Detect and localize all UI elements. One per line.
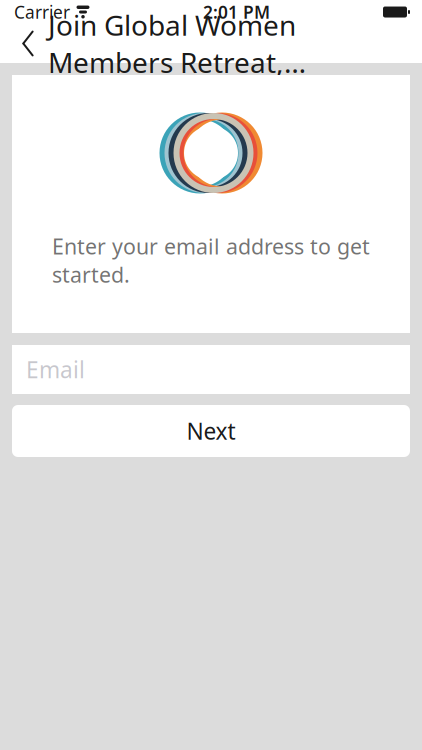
button[interactable]: Email — [12, 345, 410, 394]
staticText: Next — [186, 416, 235, 446]
button[interactable]: Back — [8, 24, 48, 63]
staticText: Join Global Women Members Retreat,… — [48, 6, 306, 81]
staticText: Carrier — [14, 0, 70, 23]
button[interactable]: Next — [12, 405, 410, 457]
staticText: Email — [26, 354, 85, 384]
staticText: Enter your email address to get started. — [52, 232, 370, 289]
staticText: 2:01 PM — [203, 0, 270, 23]
